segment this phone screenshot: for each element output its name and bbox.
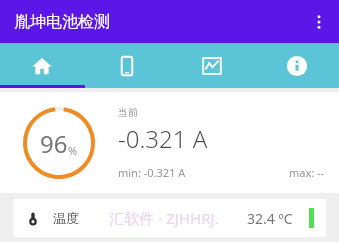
button[interactable]: Home <box>0 43 84 88</box>
staticText: 32.4 ºC <box>247 209 293 228</box>
staticText: 96 <box>40 127 68 160</box>
staticText: min: -0.321 A <box>118 165 186 180</box>
button[interactable]: Chart <box>169 43 254 88</box>
staticText: % <box>68 143 78 158</box>
button[interactable]: 96 <box>0 92 339 193</box>
staticText: 温度 <box>53 210 79 226</box>
button[interactable]: Info <box>254 43 339 88</box>
staticText: 汇软件 · ZJHHRJ. <box>109 208 219 228</box>
staticText: max: -- <box>289 165 325 180</box>
button[interactable]: More options <box>299 2 339 42</box>
button[interactable]: Device <box>84 43 169 88</box>
button[interactable]: 温度 <box>13 199 326 237</box>
staticText: 胤坤电池检测 <box>14 12 110 32</box>
staticText: 当前 <box>118 106 138 119</box>
staticText: -0.321 A <box>118 122 208 155</box>
